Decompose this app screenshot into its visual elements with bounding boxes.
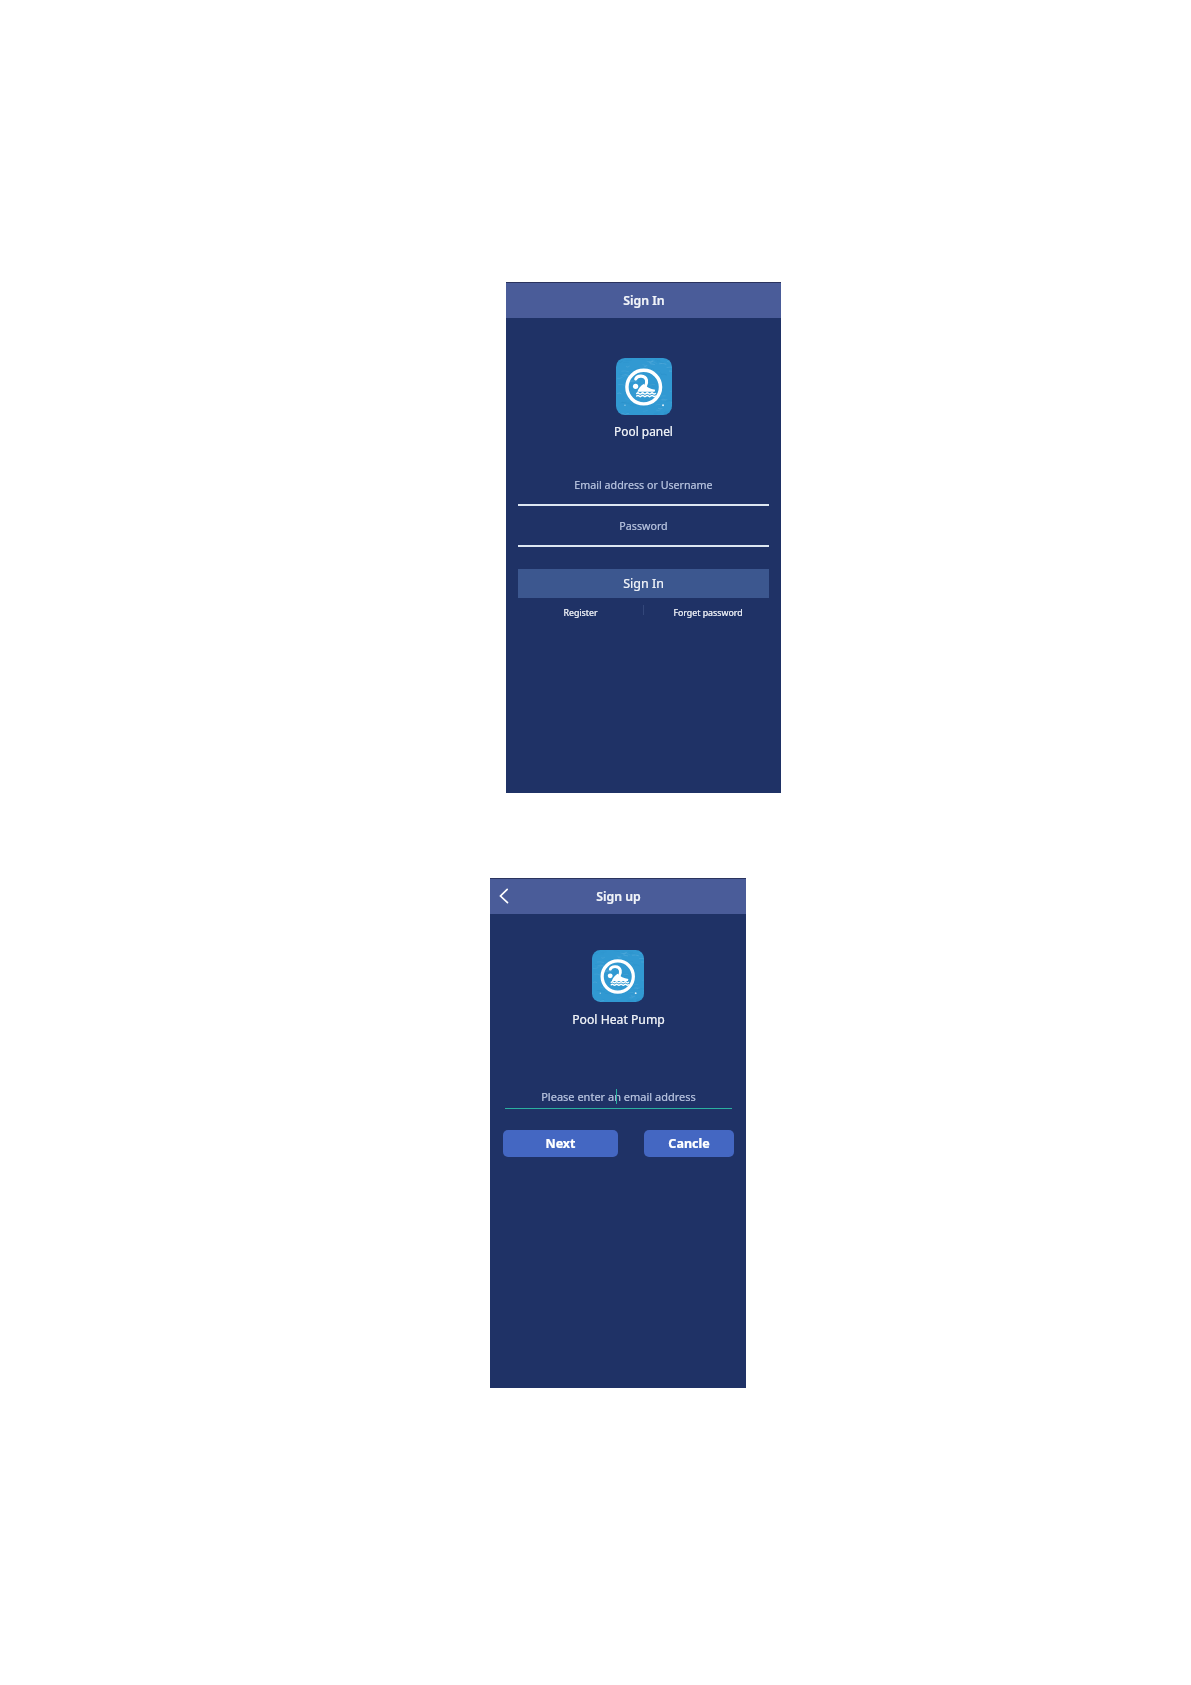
staticText: Forget password (673, 607, 743, 619)
button[interactable]: Next (503, 1130, 618, 1157)
button[interactable]: Register (550, 605, 610, 620)
staticText: Pool Heat Pump (572, 1011, 665, 1028)
staticText: Register (563, 607, 598, 619)
button[interactable]: Sign In (518, 569, 769, 598)
staticText: Next (545, 1135, 576, 1152)
staticText: Sign In (623, 292, 665, 309)
staticText: Password (619, 519, 668, 534)
button[interactable]: Password (518, 517, 769, 535)
staticText: Sign up (596, 888, 641, 905)
button[interactable]: Cancle (644, 1130, 734, 1157)
button[interactable]: Please enter an email address (505, 1087, 732, 1105)
staticText: Email address or Username (574, 478, 713, 493)
button[interactable]: Forget password (670, 605, 746, 620)
staticText: Cancle (668, 1135, 710, 1152)
button[interactable]: Email address or Username (518, 476, 769, 494)
staticText: Sign In (623, 575, 664, 592)
button[interactable]: Back (492, 884, 516, 908)
staticText: Please enter an email address (541, 1089, 696, 1104)
staticText: Pool panel (614, 423, 673, 439)
